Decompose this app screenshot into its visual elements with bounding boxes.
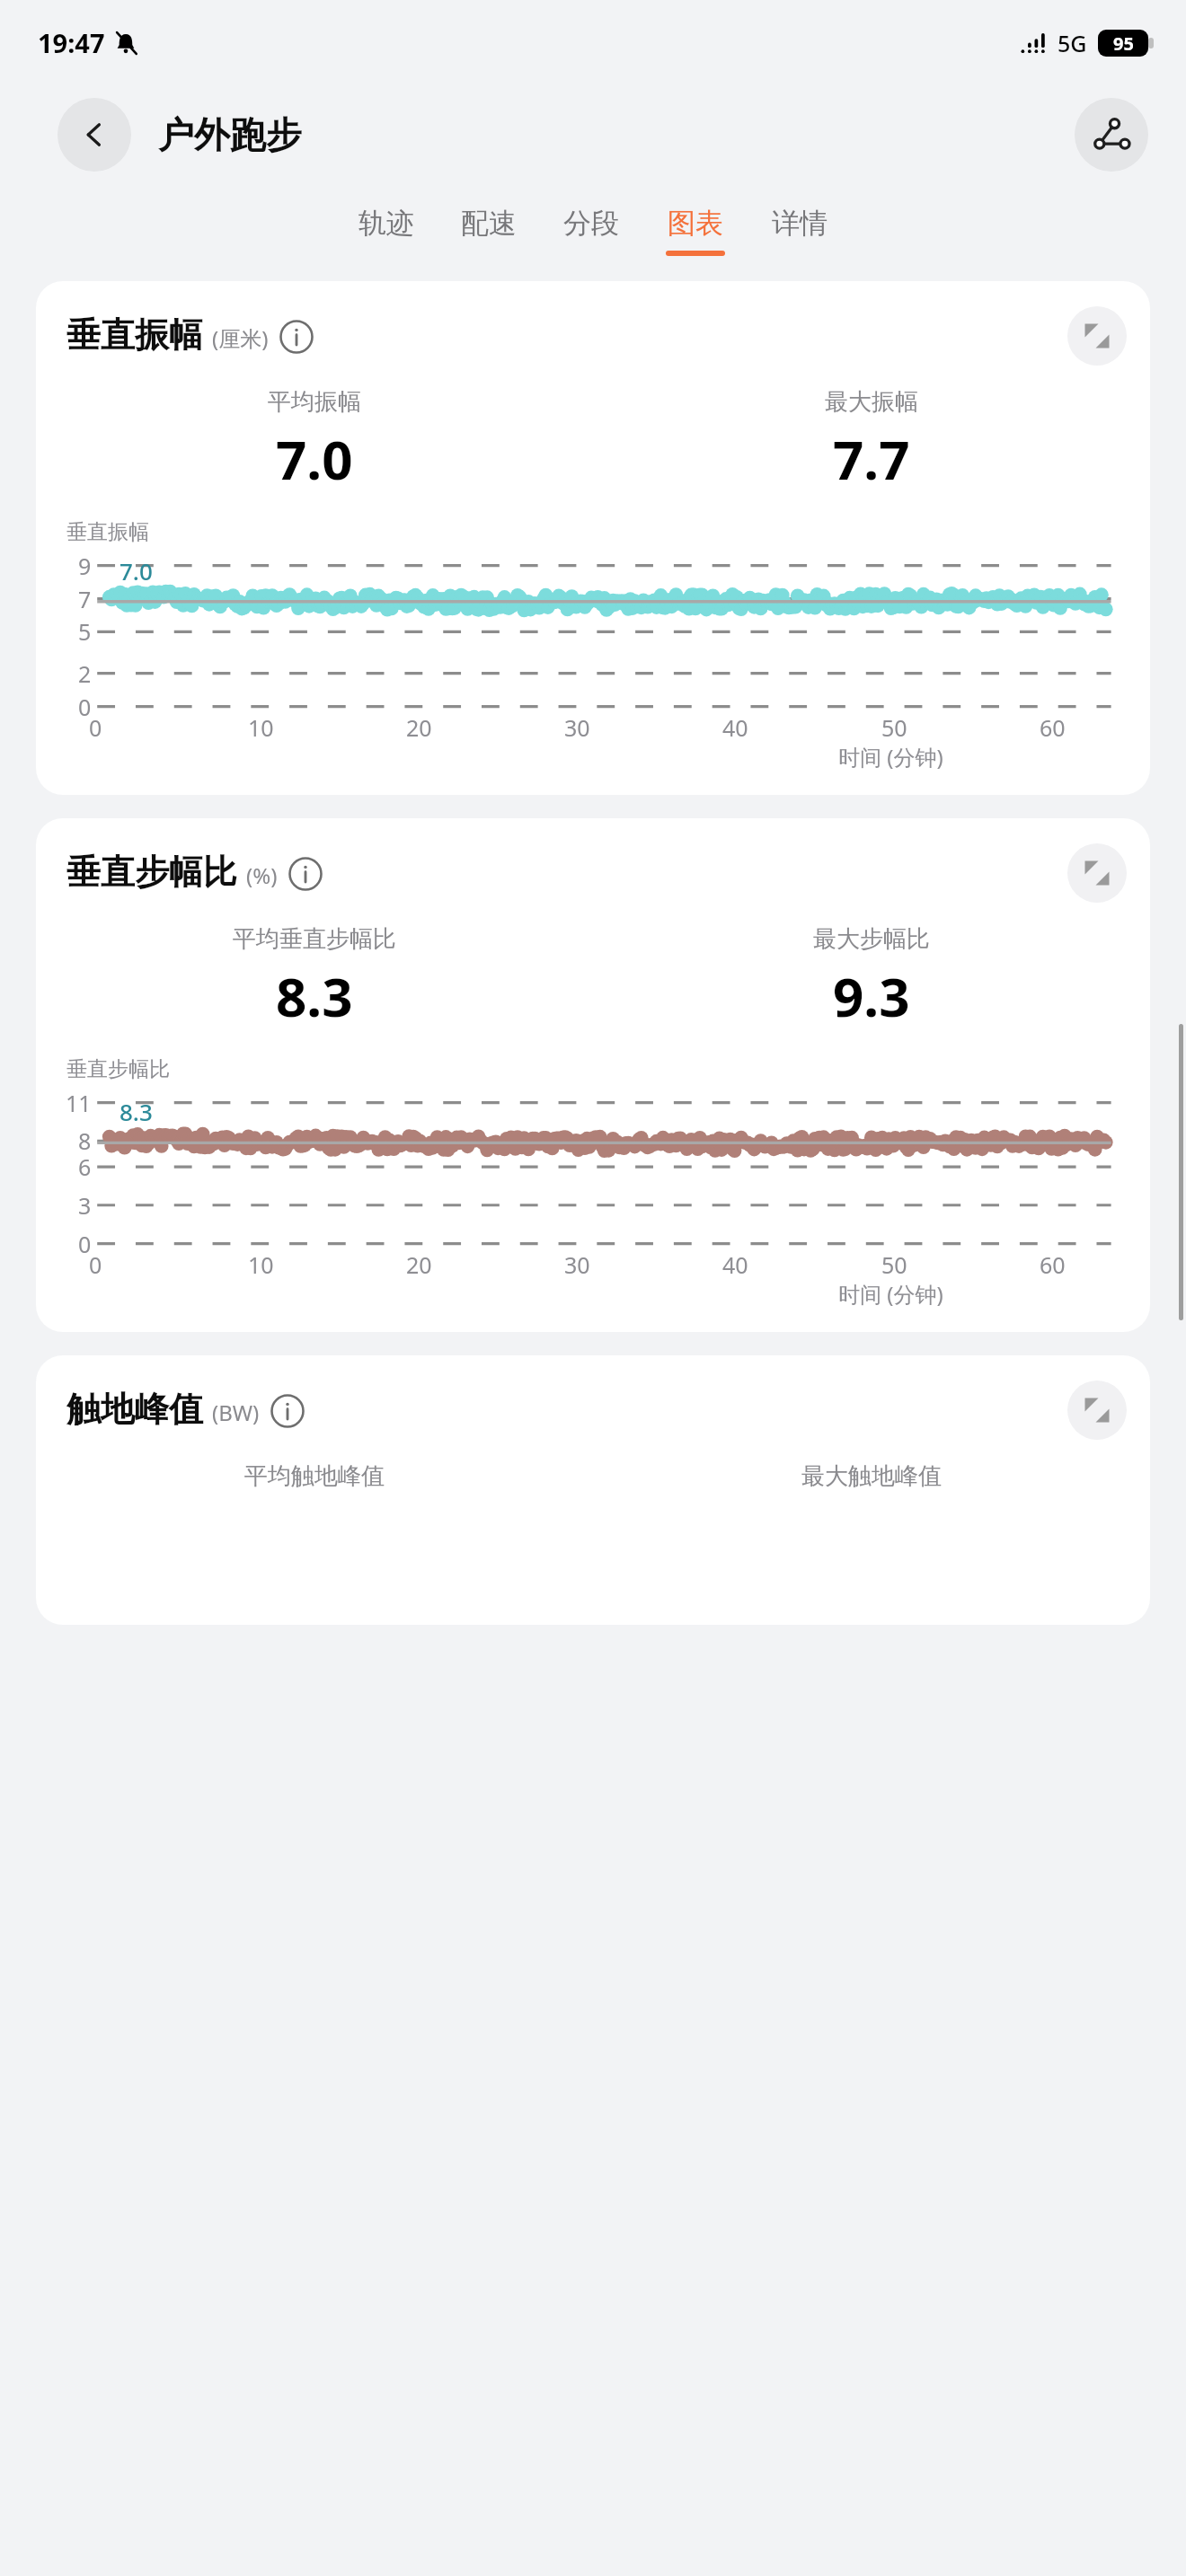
staticText: 0 <box>78 1229 92 1259</box>
staticText: 7.0 <box>119 555 153 587</box>
staticText: 7 <box>78 584 92 614</box>
staticText: 11 <box>66 1088 92 1118</box>
button[interactable]: Expand chart <box>1067 1381 1127 1440</box>
staticText: 平均振幅 <box>268 387 361 417</box>
button[interactable]: 详情 <box>748 200 851 261</box>
staticText: 配速 <box>461 206 517 241</box>
staticText: 图表 <box>668 206 723 241</box>
button[interactable]: Back <box>58 98 131 172</box>
staticText: 时间 (分钟) <box>838 742 943 772</box>
staticText: (%) <box>246 860 278 890</box>
staticText: 95 <box>1113 31 1134 56</box>
staticText: 50 <box>881 1249 907 1280</box>
button[interactable]: 轨迹 <box>335 200 438 261</box>
staticText: 3 <box>78 1190 92 1221</box>
staticText: 7.0 <box>276 422 353 496</box>
staticText: 分段 <box>563 206 619 241</box>
staticText: 2 <box>78 658 92 689</box>
button[interactable]: Expand chart <box>1067 306 1127 366</box>
staticText: (BW) <box>212 1398 260 1427</box>
button[interactable]: 配速 <box>438 200 540 261</box>
staticText: 垂直振幅 <box>66 313 203 357</box>
staticText: 平均触地峰值 <box>244 1461 385 1491</box>
staticText: 9.3 <box>833 959 910 1033</box>
button[interactable]: Expand chart <box>36 281 1150 795</box>
staticText: 19:47 <box>38 25 105 60</box>
button[interactable]: Share <box>1075 98 1148 172</box>
staticText: 60 <box>1040 712 1066 743</box>
staticText: 30 <box>564 1249 590 1280</box>
staticText: 0 <box>89 712 102 743</box>
staticText: 30 <box>564 712 590 743</box>
staticText: 40 <box>722 712 748 743</box>
staticText: 7.7 <box>833 422 910 496</box>
staticText: (厘米) <box>212 323 269 353</box>
staticText: 详情 <box>772 206 828 241</box>
button[interactable]: Expand chart <box>36 1355 1150 1625</box>
staticText: 10 <box>248 712 274 743</box>
staticText: 5 <box>78 616 92 647</box>
staticText: 20 <box>406 712 432 743</box>
button[interactable]: Expand chart <box>36 818 1150 1332</box>
staticText: 时间 (分钟) <box>838 1279 943 1309</box>
staticText: 平均垂直步幅比 <box>233 924 396 954</box>
staticText: 垂直步幅比 <box>66 851 237 894</box>
staticText: 6 <box>78 1151 92 1182</box>
staticText: 最大触地峰值 <box>801 1461 942 1491</box>
staticText: 最大步幅比 <box>813 924 930 954</box>
staticText: 8 <box>78 1125 92 1156</box>
button[interactable]: Info <box>270 1394 305 1428</box>
staticText: 垂直振幅 <box>66 519 149 545</box>
staticText: 50 <box>881 712 907 743</box>
button[interactable]: Expand chart <box>1067 843 1127 903</box>
staticText: 最大振幅 <box>825 387 918 417</box>
button[interactable]: Info <box>279 320 314 354</box>
staticText: 0 <box>89 1249 102 1280</box>
staticText: 10 <box>248 1249 274 1280</box>
staticText: 5G <box>1058 28 1087 58</box>
staticText: 20 <box>406 1249 432 1280</box>
button[interactable]: Info <box>288 857 323 891</box>
staticText: 户外跑步 <box>158 112 302 157</box>
staticText: 垂直步幅比 <box>66 1056 170 1082</box>
staticText: 触地峰值 <box>66 1388 203 1431</box>
staticText: 轨迹 <box>358 206 414 241</box>
staticText: 8.3 <box>276 959 353 1033</box>
staticText: 8.3 <box>119 1096 153 1127</box>
staticText: 40 <box>722 1249 748 1280</box>
button[interactable]: 图表 <box>642 200 748 261</box>
button[interactable]: 分段 <box>540 200 642 261</box>
staticText: 60 <box>1040 1249 1066 1280</box>
staticText: 0 <box>78 692 92 722</box>
staticText: 9 <box>78 551 92 581</box>
